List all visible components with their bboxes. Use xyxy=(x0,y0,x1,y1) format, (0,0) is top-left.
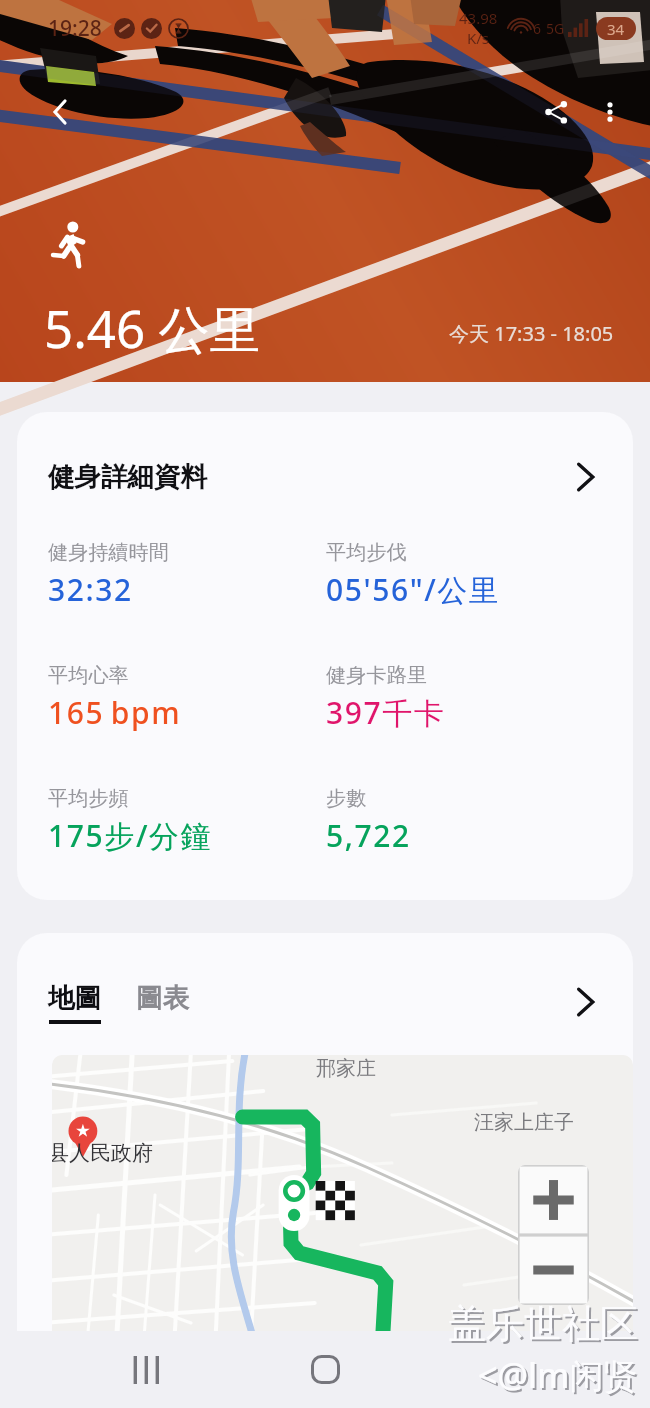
staticText: 步數 xyxy=(326,786,367,811)
staticText: 5G xyxy=(546,19,565,38)
staticText: 397千卡 xyxy=(326,692,446,733)
staticText: 汪家上庄子 xyxy=(474,1110,574,1135)
button[interactable]: Route map xyxy=(52,1055,633,1345)
button[interactable]: More options xyxy=(586,88,634,136)
staticText: 健身卡路里 xyxy=(326,663,427,688)
button[interactable]: Zoom out xyxy=(518,1235,589,1305)
staticText: 32:32 xyxy=(48,569,133,610)
staticText: 43.98 xyxy=(459,8,498,28)
staticText: 19:28 xyxy=(48,14,102,43)
staticText: 盖乐世社区 xyxy=(450,1302,640,1350)
staticText: 165 bpm xyxy=(48,692,182,733)
button[interactable]: 健身詳細資料 xyxy=(17,412,633,900)
staticText: 175步/分鐘 xyxy=(48,815,213,856)
staticText: 5,722 xyxy=(326,815,411,856)
button[interactable]: Back xyxy=(36,88,84,136)
button[interactable]: Back xyxy=(466,1331,550,1408)
button[interactable]: Home xyxy=(283,1331,367,1408)
staticText: 34 xyxy=(607,19,625,39)
button[interactable]: Zoom in xyxy=(518,1165,589,1235)
staticText: 盖乐世社区 xyxy=(448,1300,638,1348)
staticText: 今天 17:33 - 18:05 xyxy=(449,320,614,347)
staticText: <@lm闲贤 xyxy=(480,1354,640,1400)
button[interactable]: Share xyxy=(532,88,580,136)
button[interactable]: 圖表 xyxy=(136,981,189,1014)
button[interactable]: 地圖 xyxy=(48,981,101,1024)
staticText: 圖表 xyxy=(136,981,189,1014)
staticText: 平均步頻 xyxy=(48,786,129,811)
staticText: 地圖 xyxy=(48,981,101,1014)
button[interactable]: Open map xyxy=(571,986,603,1018)
staticText: <@lm闲贤 xyxy=(478,1352,638,1398)
staticText: 健身持續時間 xyxy=(48,540,170,565)
staticText: K/s xyxy=(467,28,490,48)
staticText: 5.46 公里 xyxy=(44,293,261,363)
staticText: 平均心率 xyxy=(48,663,129,688)
staticText: 健身詳細資料 xyxy=(48,460,207,493)
staticText: 6 xyxy=(533,19,542,38)
staticText: 邢家庄 xyxy=(316,1056,376,1081)
staticText: 平均步伐 xyxy=(326,540,407,565)
button[interactable]: Recent apps xyxy=(100,1331,184,1408)
staticText: 05'56"/公里 xyxy=(326,569,501,610)
staticText: 县人民政府 xyxy=(52,1140,153,1166)
